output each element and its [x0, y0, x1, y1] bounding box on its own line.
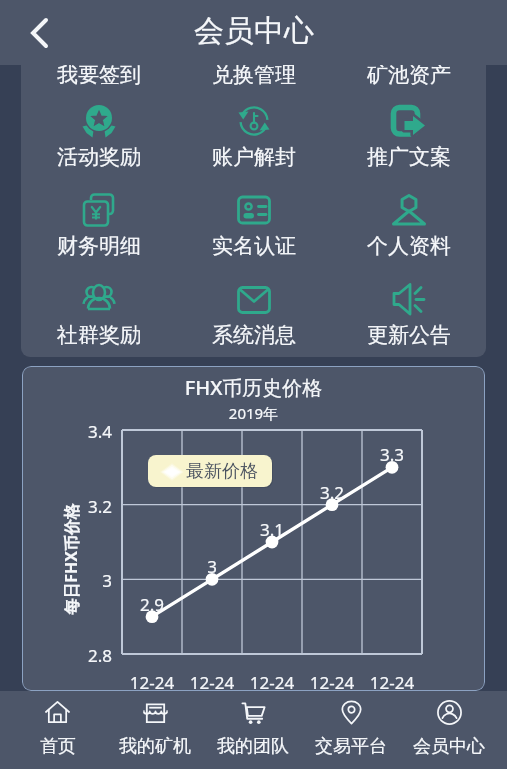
staticText: 3 — [42, 569, 112, 589]
button[interactable]: 我的矿机 — [106, 702, 204, 758]
staticText: 兑换管理 — [212, 65, 296, 88]
button[interactable]: 我的团队 — [204, 702, 302, 758]
staticText: 3.2 — [42, 495, 112, 515]
staticText: FHX币历史价格 — [22, 374, 485, 401]
staticText: 矿池资产 — [367, 65, 451, 88]
staticText: 最新价格 — [186, 460, 258, 483]
button[interactable]: 最新价格 — [148, 455, 272, 487]
staticText: 12-24 — [297, 671, 367, 691]
button[interactable]: 系统消息 — [176, 269, 331, 357]
staticText: 2019年 — [22, 403, 485, 423]
button[interactable]: 实名认证 — [176, 180, 331, 269]
staticText: 12-24 — [237, 671, 307, 691]
staticText: 2.9 — [122, 593, 182, 616]
staticText: 12-24 — [357, 671, 427, 691]
button[interactable]: 活动奖励 — [21, 91, 176, 180]
staticText: 活动奖励 — [57, 144, 141, 170]
button[interactable]: 更新公告 — [331, 269, 486, 357]
button[interactable]: 矿池资产 — [331, 65, 486, 91]
staticText: 12-24 — [177, 671, 247, 691]
button[interactable]: 会员中心 — [400, 702, 498, 758]
button[interactable]: Back — [20, 14, 58, 52]
staticText: 3.1 — [242, 518, 302, 541]
button[interactable]: 账户解封 — [176, 91, 331, 180]
staticText: 交易平台 — [315, 735, 387, 758]
button[interactable]: 财务明细 — [21, 180, 176, 269]
button[interactable]: 我要签到 — [21, 65, 176, 91]
staticText: 会员中心 — [194, 12, 314, 50]
staticText: 我的矿机 — [119, 735, 191, 758]
staticText: 更新公告 — [367, 322, 451, 348]
staticText: 3 — [182, 555, 242, 578]
button[interactable]: 首页 — [9, 702, 106, 758]
staticText: 3.3 — [362, 443, 422, 466]
staticText: 社群奖励 — [57, 322, 141, 348]
staticText: 首页 — [40, 735, 76, 758]
button[interactable]: 推广文案 — [331, 91, 486, 180]
staticText: 每日FHX币价格 — [60, 489, 80, 629]
staticText: 3.2 — [302, 481, 362, 504]
button[interactable]: 兑换管理 — [176, 65, 331, 91]
staticText: 12-24 — [117, 671, 187, 691]
button[interactable]: 个人资料 — [331, 180, 486, 269]
staticText: 财务明细 — [57, 233, 141, 259]
staticText: 系统消息 — [212, 322, 296, 348]
staticText: 2.8 — [42, 644, 112, 664]
staticText: 账户解封 — [212, 144, 296, 170]
staticText: 我要签到 — [57, 65, 141, 88]
staticText: 会员中心 — [413, 735, 485, 758]
staticText: 实名认证 — [212, 233, 296, 259]
button[interactable]: 交易平台 — [302, 702, 400, 758]
staticText: 个人资料 — [367, 233, 451, 259]
staticText: 推广文案 — [367, 144, 451, 170]
staticText: 我的团队 — [217, 735, 289, 758]
staticText: 3.4 — [42, 420, 112, 440]
button[interactable]: 社群奖励 — [21, 269, 176, 357]
